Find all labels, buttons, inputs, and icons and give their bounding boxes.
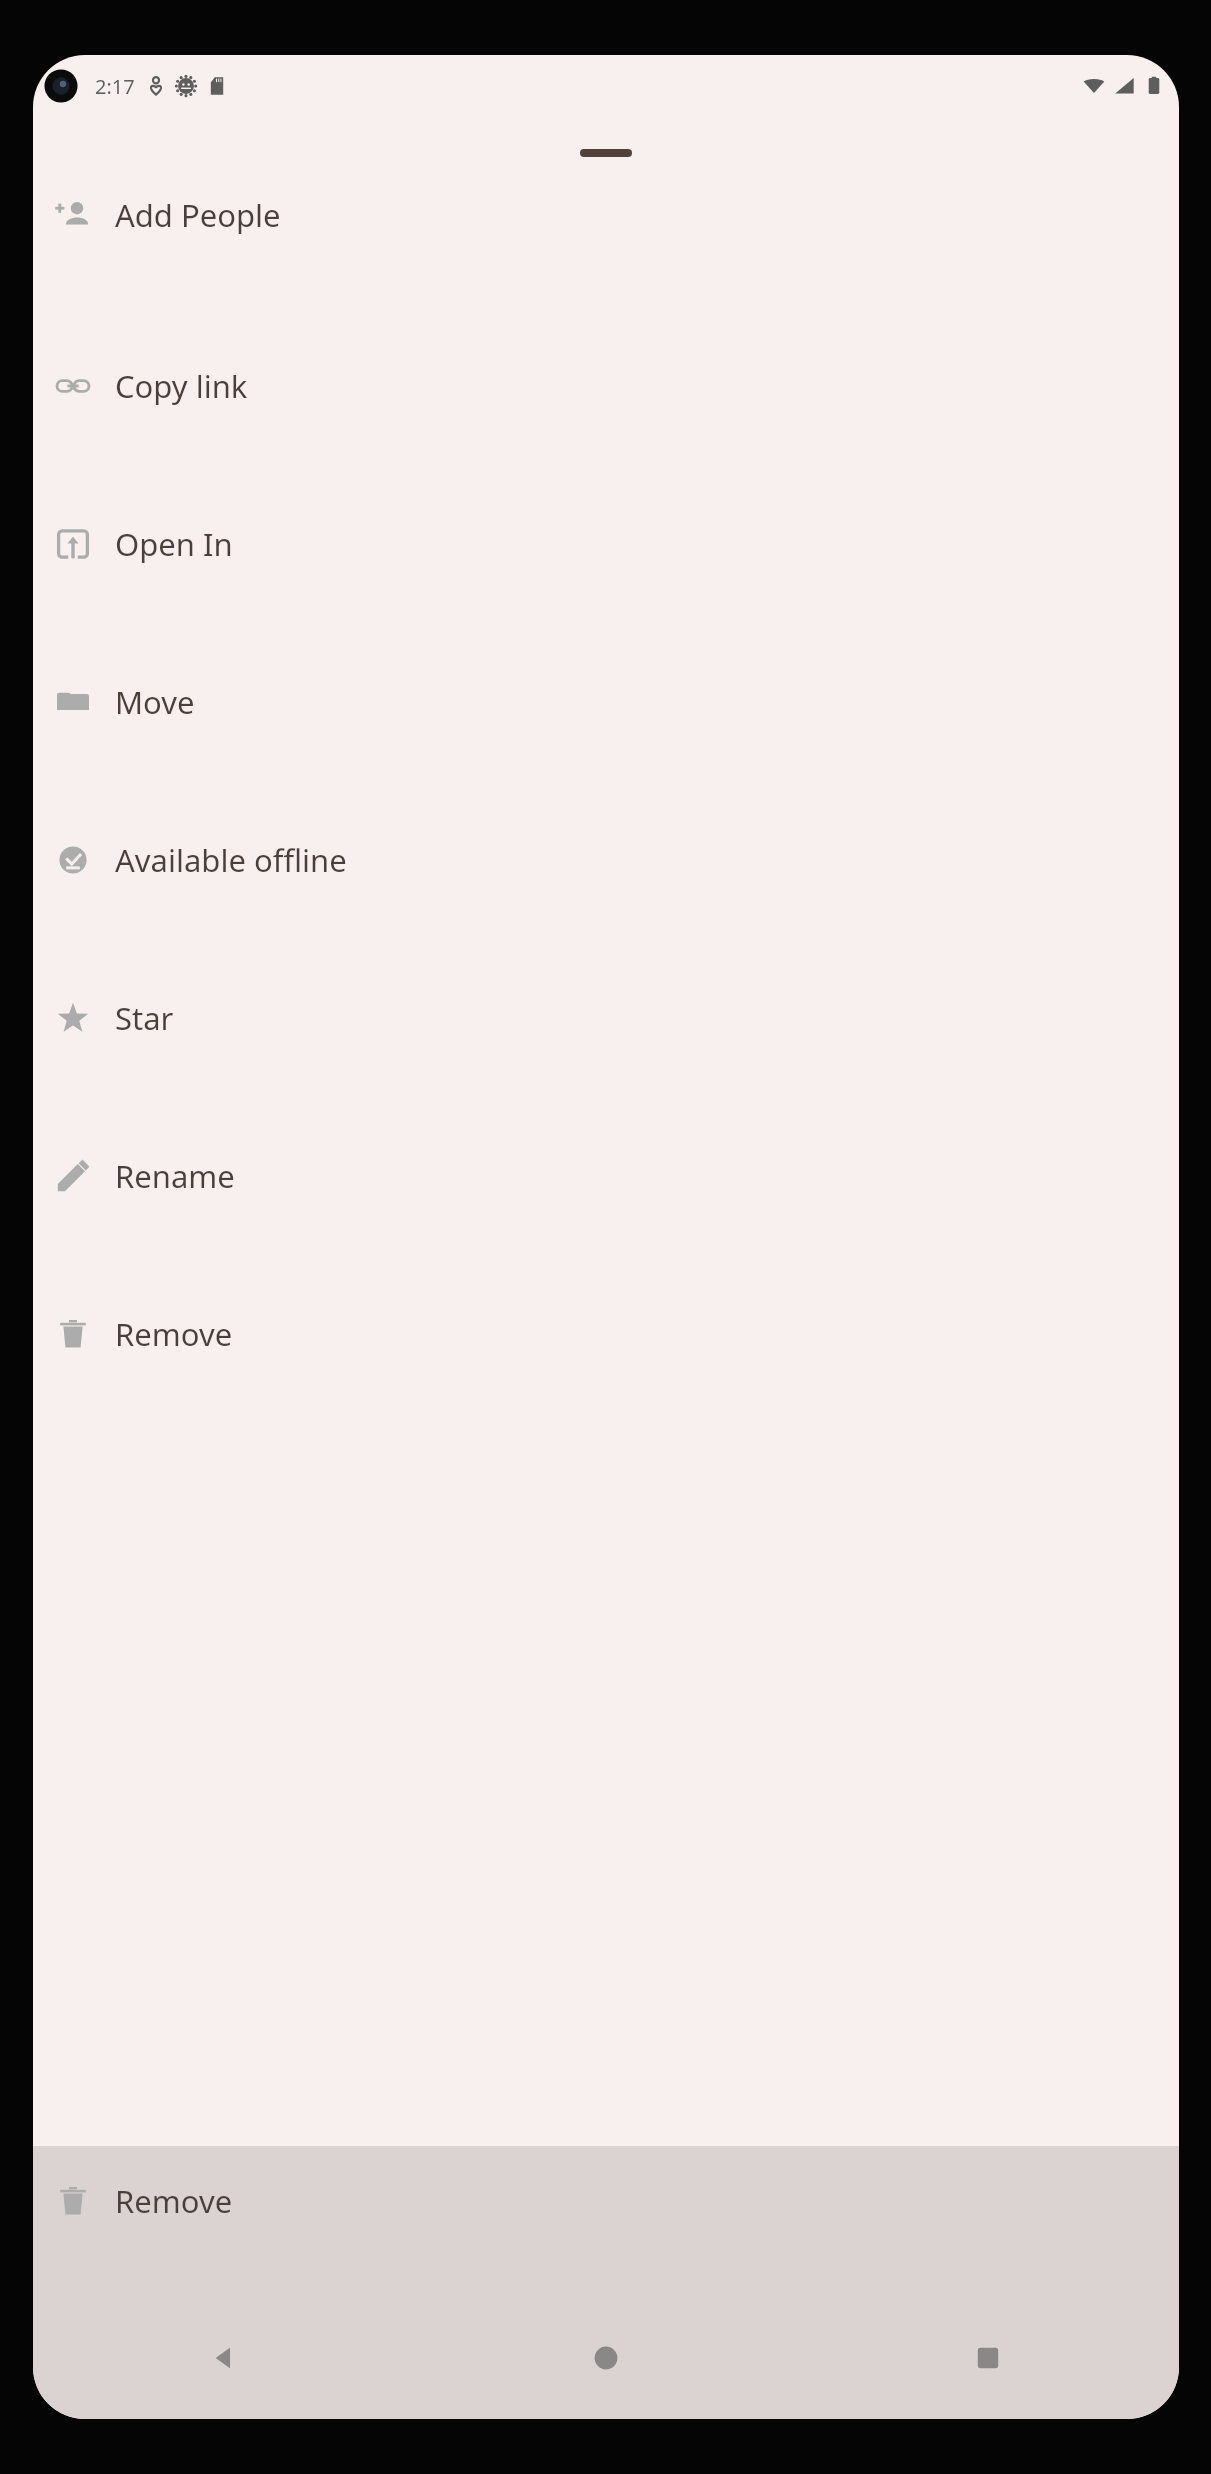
button[interactable]: Back [33, 2319, 415, 2397]
button[interactable]: Open In [33, 465, 1179, 623]
button[interactable]: Rename [33, 1097, 1179, 1255]
staticText: Rename [115, 1155, 235, 1197]
staticText: Remove [115, 2180, 233, 2222]
button[interactable]: Star [33, 939, 1179, 1097]
button[interactable]: Remove [33, 2146, 1179, 2256]
staticText: Copy link [115, 365, 248, 407]
staticText: Open In [115, 523, 233, 565]
button[interactable]: Available offline [33, 781, 1179, 939]
button[interactable]: Remove [33, 1255, 1179, 1413]
staticText: Available offline [115, 839, 347, 881]
button[interactable]: Copy link [33, 307, 1179, 465]
staticText: 2:17 [95, 73, 135, 100]
staticText: Remove [115, 1313, 233, 1355]
staticText: Move [115, 681, 195, 723]
staticText: Star [115, 997, 174, 1039]
staticText: Add People [115, 194, 281, 236]
button[interactable]: Home [415, 2319, 797, 2397]
button[interactable]: Add People [33, 149, 1179, 281]
button[interactable]: Recent apps [797, 2319, 1179, 2397]
button[interactable]: Move [33, 623, 1179, 781]
